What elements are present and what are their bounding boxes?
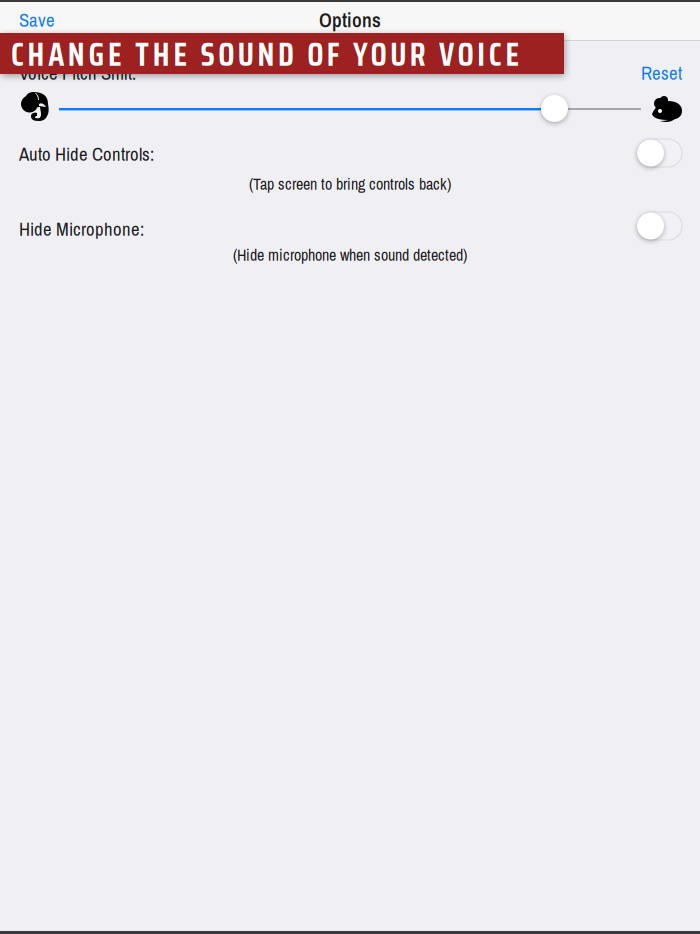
staticText: Hide Microphone:	[19, 216, 144, 241]
button[interactable]: Hide Microphone	[637, 212, 682, 240]
staticText: Options	[319, 6, 381, 33]
staticText: Auto Hide Controls:	[19, 141, 154, 166]
staticText: Voice Pitch Shift:	[19, 60, 136, 85]
staticText: CHANGE THE SOUND OF YOUR VOICE	[11, 29, 519, 80]
staticText: Save	[19, 7, 55, 32]
button[interactable]: Auto Hide Controls	[637, 139, 682, 167]
button[interactable]: Reset	[602, 63, 682, 83]
staticText: Reset	[641, 60, 682, 85]
staticText: (Tap screen to bring controls back)	[249, 173, 451, 195]
button[interactable]: Save	[19, 8, 89, 32]
staticText: (Hide microphone when sound detected)	[233, 244, 467, 266]
